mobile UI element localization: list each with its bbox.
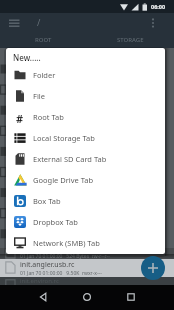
staticText: 01 Jan 70 01:00:00 9.50K rwxr-x--- (20, 270, 102, 277)
staticText: Folder (33, 70, 56, 80)
staticText: # (16, 111, 24, 123)
staticText: External SD Card Tab (33, 154, 107, 164)
staticText: File (33, 91, 45, 101)
staticText: Root Tab (33, 112, 64, 122)
staticText: Google Drive Tab (33, 175, 94, 185)
staticText: Network (SMB) Tab (33, 238, 100, 248)
button[interactable] (0, 259, 174, 277)
staticText: Dropbox Tab (33, 217, 78, 227)
staticText: 06:00 (151, 3, 166, 10)
button[interactable]: Dropbox Tab (6, 211, 165, 232)
button[interactable]: STORAGE (87, 32, 174, 48)
staticText: / (37, 16, 41, 28)
button[interactable]: Box Tab (6, 190, 165, 211)
button[interactable] (141, 256, 165, 280)
button[interactable] (150, 18, 156, 28)
button[interactable]: Folder (6, 64, 165, 85)
staticText: 01 Jan 70 01:00:00 524 Bytes rw-r--r-- (20, 253, 110, 260)
staticText: ROOT (35, 36, 52, 44)
staticText: init.environ.rc (20, 277, 59, 285)
button[interactable]: # (6, 106, 165, 127)
button[interactable]: Network (SMB) Tab (6, 232, 165, 253)
button[interactable] (126, 292, 136, 302)
button[interactable] (82, 292, 92, 302)
button[interactable] (9, 19, 20, 27)
staticText: Box Tab (33, 196, 61, 206)
button[interactable]: External SD Card Tab (6, 148, 165, 169)
button[interactable]: Google Drive Tab (6, 169, 165, 190)
staticText: New..... (13, 52, 41, 63)
staticText: init.angler.usb.rc (20, 260, 75, 270)
button[interactable]: Local Storage Tab (6, 127, 165, 148)
staticText: STORAGE (117, 36, 144, 44)
button[interactable]: File (6, 85, 165, 106)
button[interactable] (38, 292, 48, 302)
button[interactable]: ROOT (0, 32, 87, 48)
staticText: Local Storage Tab (33, 133, 95, 143)
